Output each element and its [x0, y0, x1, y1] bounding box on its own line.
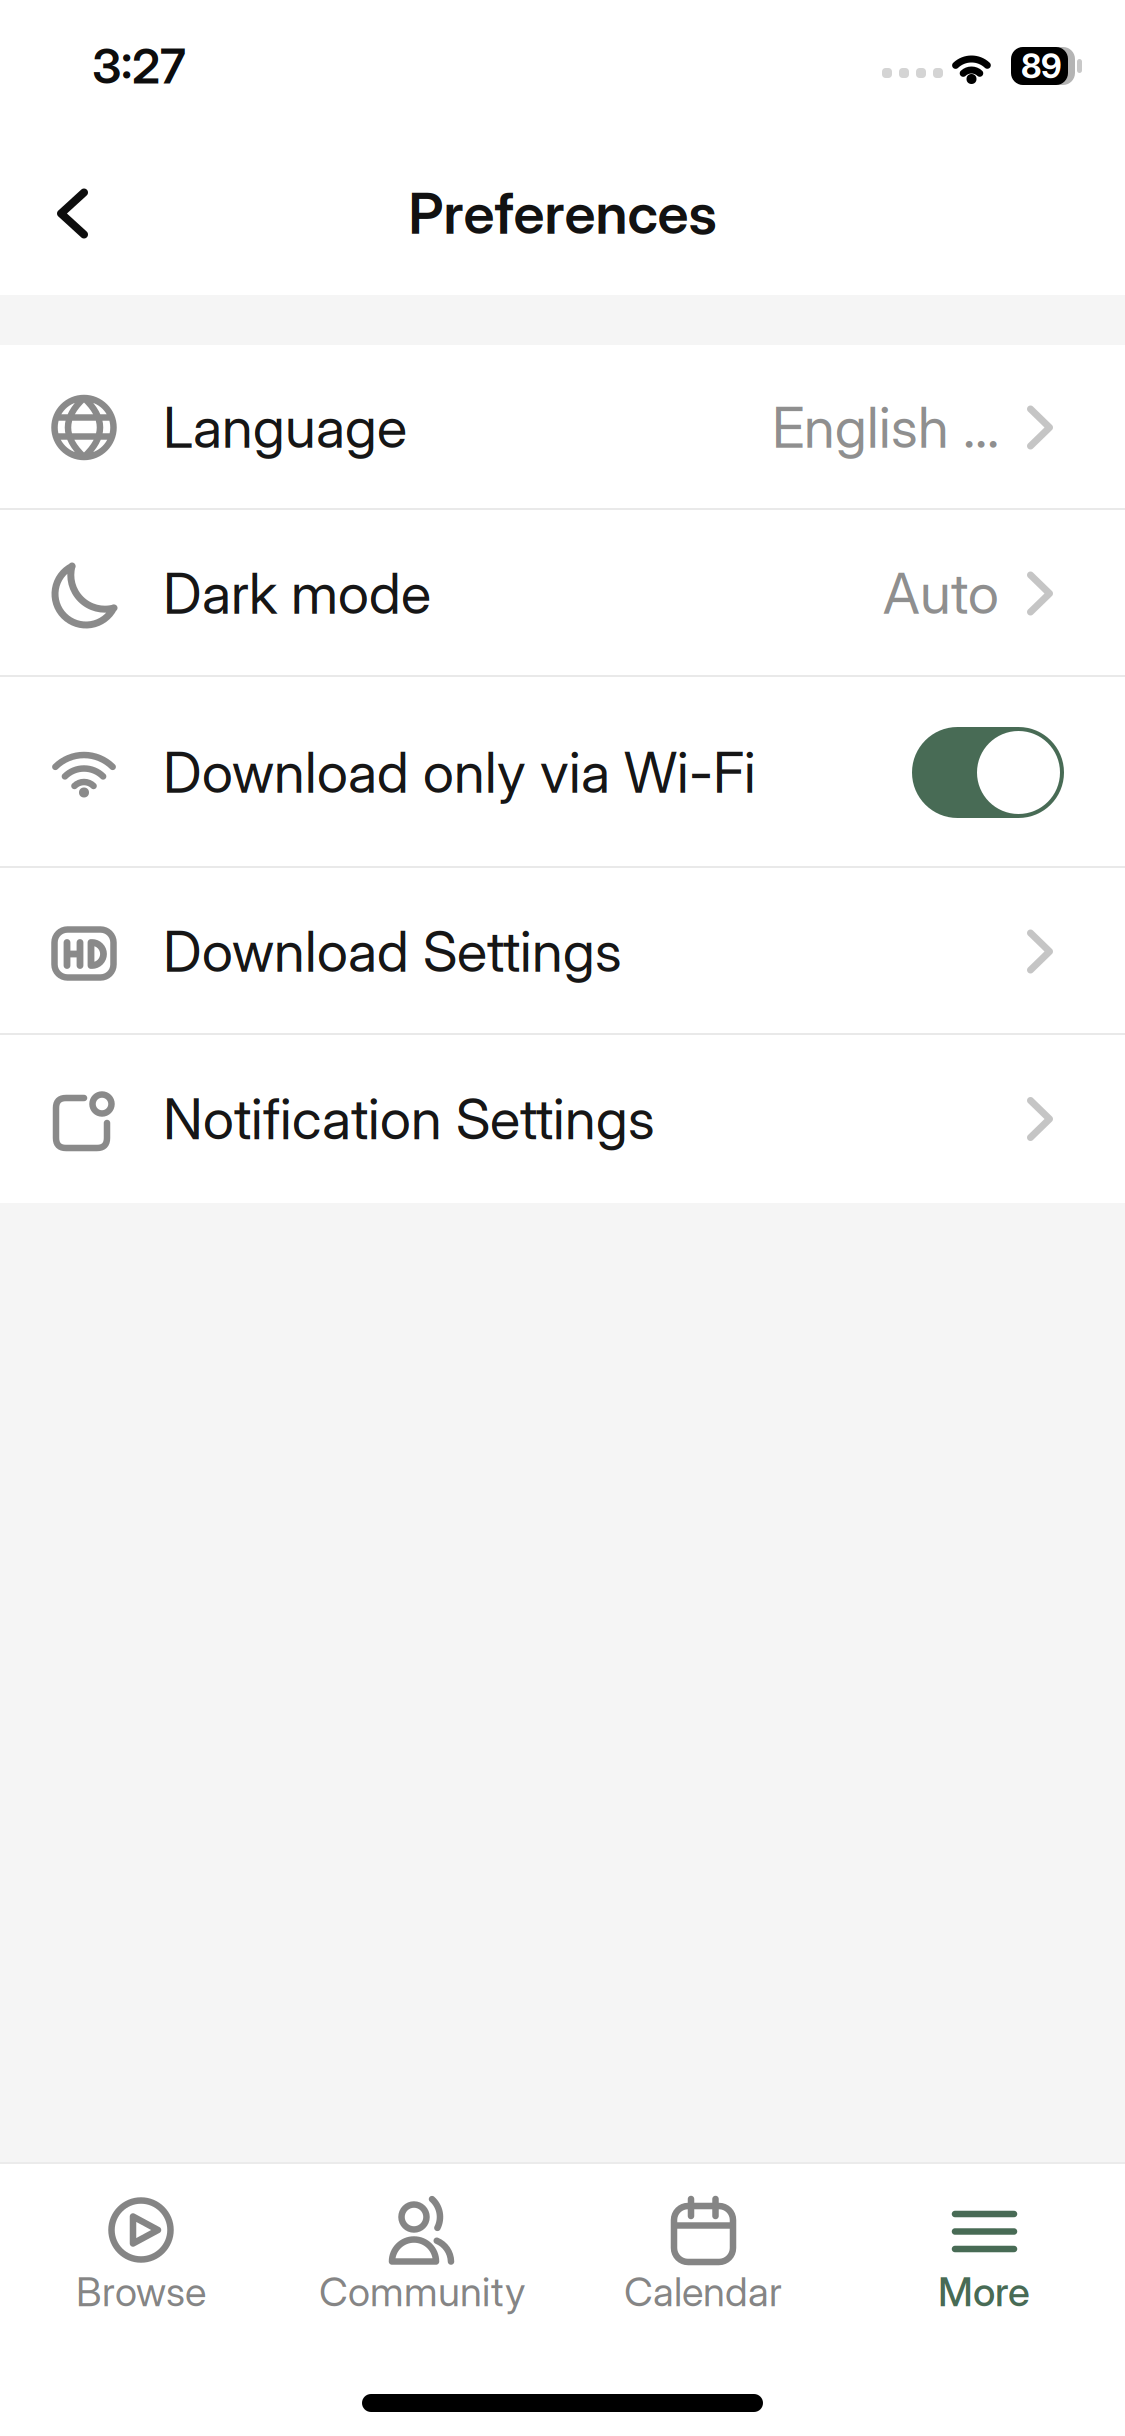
staticText: English ... [772, 394, 999, 461]
staticText: 89 [1021, 46, 1062, 86]
button[interactable]: Notification Settings [0, 1035, 1125, 1203]
staticText: Browse [76, 2268, 206, 2315]
staticText: Dark mode [163, 560, 431, 627]
staticText: Auto [883, 560, 999, 627]
button[interactable]: Dark mode [0, 510, 1125, 677]
button[interactable]: Download Settings [0, 868, 1125, 1035]
button[interactable]: Language [0, 345, 1125, 510]
staticText: Notification Settings [163, 1086, 655, 1152]
staticText: Calendar [624, 2268, 782, 2315]
staticText: Community [319, 2268, 525, 2315]
button[interactable]: Download only via Wi-Fi [912, 727, 1064, 818]
button[interactable]: Back [0, 188, 89, 238]
staticText: Download Settings [163, 918, 622, 985]
button[interactable]: Browse [0, 2195, 281, 2315]
staticText: More [938, 2268, 1030, 2315]
staticText: Download only via Wi-Fi [163, 739, 756, 806]
staticText: Language [163, 394, 407, 461]
button[interactable]: Community [281, 2195, 562, 2315]
staticText: 3:27 [92, 38, 186, 94]
button[interactable]: Calendar [562, 2195, 843, 2315]
button[interactable]: More [843, 2195, 1124, 2315]
staticText: Preferences [408, 180, 716, 247]
